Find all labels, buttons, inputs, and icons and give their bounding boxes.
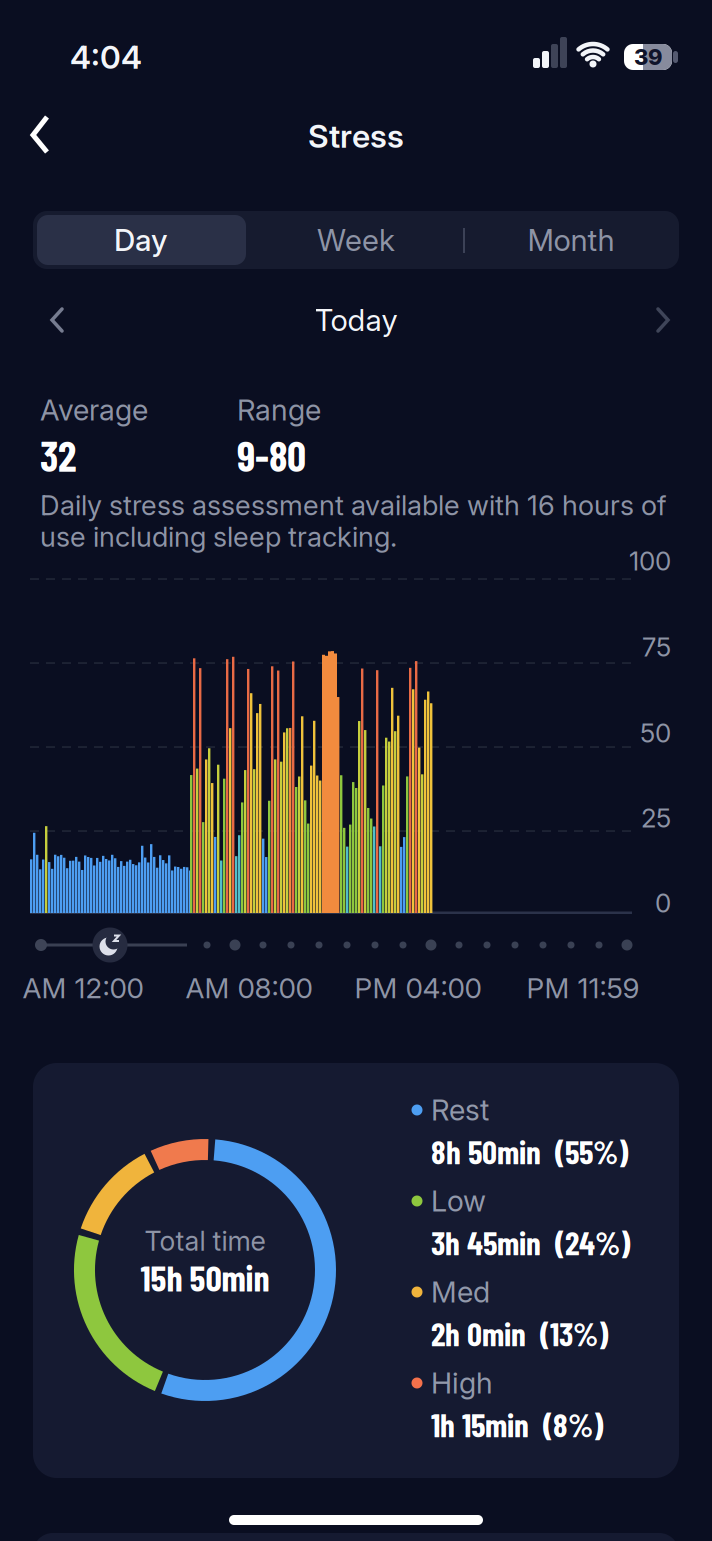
staticText: 50	[640, 718, 671, 748]
staticText: AM 12:00	[22, 972, 143, 1004]
staticText: PM 11:59	[526, 972, 639, 1004]
button[interactable]	[641, 298, 685, 342]
staticText: 39	[634, 44, 662, 70]
staticText: 4:04	[70, 39, 142, 75]
staticText: Low	[431, 1184, 486, 1218]
staticText: 3h 45min (24%)	[431, 1222, 630, 1262]
staticText: AM 08:00	[185, 972, 312, 1004]
staticText: PM 04:00	[354, 972, 481, 1004]
button[interactable]: Day	[36, 215, 245, 265]
staticText: High	[431, 1366, 493, 1400]
button[interactable]	[92, 927, 127, 962]
staticText: Range	[237, 393, 321, 427]
staticText: 25	[641, 803, 671, 833]
staticText: Stress	[308, 118, 404, 154]
button[interactable]	[35, 298, 79, 342]
staticText: 0	[655, 888, 671, 918]
staticText: 1h 15min (8%)	[431, 1404, 603, 1444]
staticText: 9-80	[237, 430, 306, 480]
staticText: Med	[431, 1275, 490, 1309]
staticText: 75	[642, 632, 671, 662]
button[interactable]	[15, 105, 75, 165]
staticText: 100	[629, 546, 671, 576]
staticText: 32	[40, 430, 76, 480]
staticText: 15h 50min	[140, 1255, 269, 1299]
staticText: 2h 0min (13%)	[431, 1313, 608, 1353]
staticText: Day	[114, 223, 168, 257]
staticText: Daily stress assessment available with 1…	[40, 489, 667, 553]
staticText: Total time	[144, 1225, 265, 1256]
staticText: 8h 50min (55%)	[431, 1131, 628, 1171]
staticText: Average	[40, 393, 148, 427]
staticText: Today	[314, 303, 397, 337]
staticText: Week	[317, 223, 395, 257]
button[interactable]: Week	[251, 215, 460, 265]
staticText: Month	[527, 223, 614, 257]
staticText: Rest	[431, 1093, 489, 1127]
button[interactable]: Month	[466, 215, 675, 265]
